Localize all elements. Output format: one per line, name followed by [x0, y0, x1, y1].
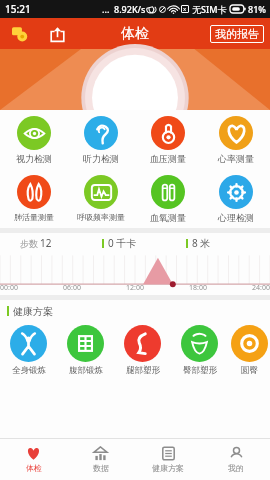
button[interactable]: 视力检测 [0, 110, 67, 169]
staticText: 00:00 [0, 283, 18, 293]
staticText: 血氧测量 [150, 212, 186, 223]
staticText: 步数 [20, 238, 38, 249]
button[interactable]: 肺活量测量 [0, 169, 67, 228]
staticText: 视力检测 [16, 153, 52, 164]
staticText: 81% [248, 3, 266, 15]
button[interactable]: 血氧测量 [134, 169, 202, 228]
button[interactable]: 我的报告 [210, 25, 264, 43]
staticText: 心理检测 [218, 212, 254, 223]
staticText: 肺活量测量 [14, 212, 54, 222]
button[interactable]: 数据 [67, 439, 134, 480]
staticText: 血压测量 [150, 153, 186, 164]
button[interactable]: 圆臀 [228, 322, 270, 379]
staticText: ... 8.92K/s [102, 3, 146, 15]
staticText: 24:00 [252, 283, 270, 293]
button[interactable]: 体检 [0, 439, 67, 480]
button[interactable]: 心理检测 [202, 169, 270, 228]
button[interactable]: 听力检测 [67, 110, 134, 169]
staticText: 体检 [121, 25, 149, 43]
staticText: 我的报告 [215, 27, 259, 41]
staticText: 圆臀 [241, 365, 258, 376]
staticText: 12 [40, 236, 52, 250]
button[interactable]: 分享 [45, 22, 69, 46]
button[interactable]: 臀部塑形 [171, 322, 228, 379]
staticText: 臀部塑形 [183, 365, 217, 376]
staticText: 腿部塑形 [126, 365, 160, 376]
staticText: 8 米 [192, 236, 211, 250]
staticText: 数据 [93, 463, 109, 473]
staticText: 无SIM卡 [192, 3, 227, 15]
staticText: 12:00 [126, 283, 144, 293]
button[interactable]: 健康方案 [134, 439, 202, 480]
button[interactable]: 血压测量 [134, 110, 202, 169]
staticText: x [183, 5, 187, 13]
staticText: 18:00 [189, 283, 207, 293]
staticText: 健康方案 [13, 305, 53, 318]
staticText: 06:00 [63, 283, 81, 293]
staticText: 健康方案 [152, 463, 184, 473]
button[interactable]: 全身锻炼 [0, 322, 57, 379]
staticText: 体检 [26, 463, 42, 473]
staticText: 全身锻炼 [12, 365, 46, 376]
button[interactable]: 我的 [202, 439, 270, 480]
staticText: 15:21 [5, 2, 31, 16]
button[interactable]: 金币 [8, 22, 32, 46]
button[interactable]: 呼吸频率测量 [67, 169, 134, 228]
staticText: 0 千卡 [108, 236, 137, 250]
button[interactable]: 心率测量 [202, 110, 270, 169]
staticText: 听力检测 [83, 153, 119, 164]
button[interactable]: 腹部锻炼 [57, 322, 114, 379]
staticText: 心率测量 [218, 153, 254, 164]
staticText: 我的 [228, 463, 244, 473]
staticText: 呼吸频率测量 [77, 212, 125, 222]
staticText: 腹部锻炼 [69, 365, 103, 376]
button[interactable]: 步数 [0, 233, 270, 253]
button[interactable]: 腿部塑形 [114, 322, 171, 379]
